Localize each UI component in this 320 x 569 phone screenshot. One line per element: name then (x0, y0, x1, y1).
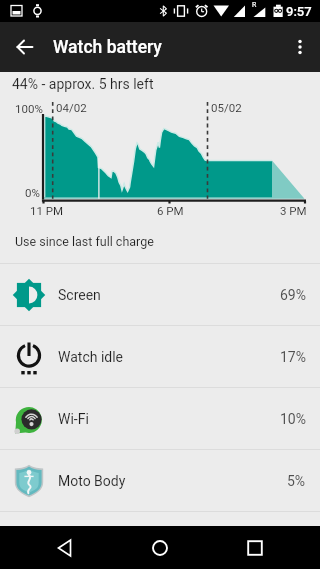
button[interactable]: Home (130, 526, 190, 569)
staticText: Watch battery (53, 37, 162, 58)
staticText: 5% (287, 473, 306, 489)
button[interactable]: Back (35, 526, 95, 569)
staticText: 44% - approx. 5 hrs left (12, 76, 154, 92)
button[interactable]: Screen (0, 264, 320, 325)
staticText: 10% (280, 411, 306, 427)
button[interactable]: Navigate up (0, 22, 50, 72)
staticText: R (252, 1, 257, 9)
staticText: Screen (58, 287, 101, 303)
staticText: 05/02 (211, 101, 242, 114)
staticText: Watch idle (58, 349, 124, 365)
staticText: 69% (280, 287, 306, 303)
staticText: 04/02 (56, 101, 87, 114)
button[interactable]: Recent apps (225, 526, 285, 569)
button[interactable]: More options (280, 22, 320, 72)
staticText: 6 PM (157, 204, 184, 217)
staticText: Wi-Fi (58, 411, 89, 427)
staticText: 9:57 (286, 4, 312, 19)
staticText: Use since last full charge (15, 234, 154, 249)
staticText: Moto Body (58, 473, 126, 489)
staticText: 11 PM (30, 204, 64, 217)
staticText: 3 PM (280, 204, 307, 217)
staticText: 100% (15, 102, 43, 115)
button[interactable]: Watch idle (0, 326, 320, 387)
staticText: 17% (280, 349, 306, 365)
button[interactable]: Moto Body (0, 450, 320, 511)
button[interactable]: Wi-Fi (0, 388, 320, 449)
staticText: 0% (25, 186, 40, 199)
